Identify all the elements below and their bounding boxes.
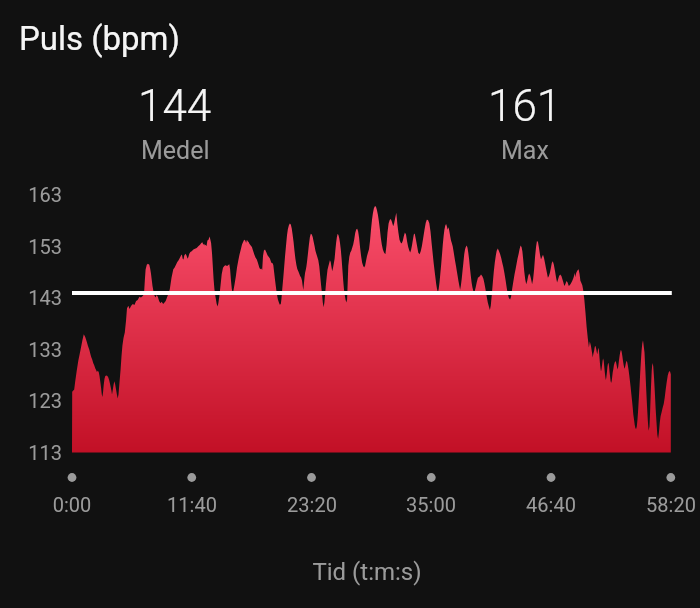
staticText: 163 [0, 183, 62, 206]
button[interactable]: 161 [350, 80, 700, 161]
staticText: Puls (bpm) [19, 19, 181, 58]
staticText: Max [501, 136, 549, 165]
staticText: 113 [0, 441, 62, 464]
staticText: Medel [141, 136, 210, 165]
staticText: 0:00 [27, 493, 117, 516]
staticText: 46:40 [506, 493, 596, 516]
staticText: Tid (t:m:s) [267, 558, 467, 586]
button[interactable]: 144 [0, 80, 350, 161]
staticText: 35:00 [386, 493, 476, 516]
staticText: 58:20 [626, 493, 700, 516]
button[interactable]: Pulsdiagram [72, 194, 671, 453]
staticText: 23:20 [267, 493, 357, 516]
staticText: 143 [0, 286, 62, 309]
staticText: 133 [0, 338, 62, 361]
staticText: 153 [0, 235, 62, 258]
staticText: 161 [488, 80, 562, 132]
staticText: 123 [0, 389, 62, 412]
staticText: 11:40 [147, 493, 237, 516]
staticText: 144 [138, 80, 212, 132]
